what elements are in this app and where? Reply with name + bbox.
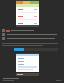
button[interactable]: List item icon <box>2 33 57 36</box>
button[interactable] <box>18 15 37 17</box>
button[interactable] <box>18 60 37 62</box>
button[interactable] <box>18 57 37 59</box>
button[interactable] <box>18 22 37 24</box>
button[interactable] <box>18 63 37 65</box>
button[interactable] <box>17 73 38 76</box>
button[interactable] <box>14 48 58 51</box>
button[interactable]: List item icon <box>2 37 55 40</box>
button[interactable] <box>18 8 37 10</box>
